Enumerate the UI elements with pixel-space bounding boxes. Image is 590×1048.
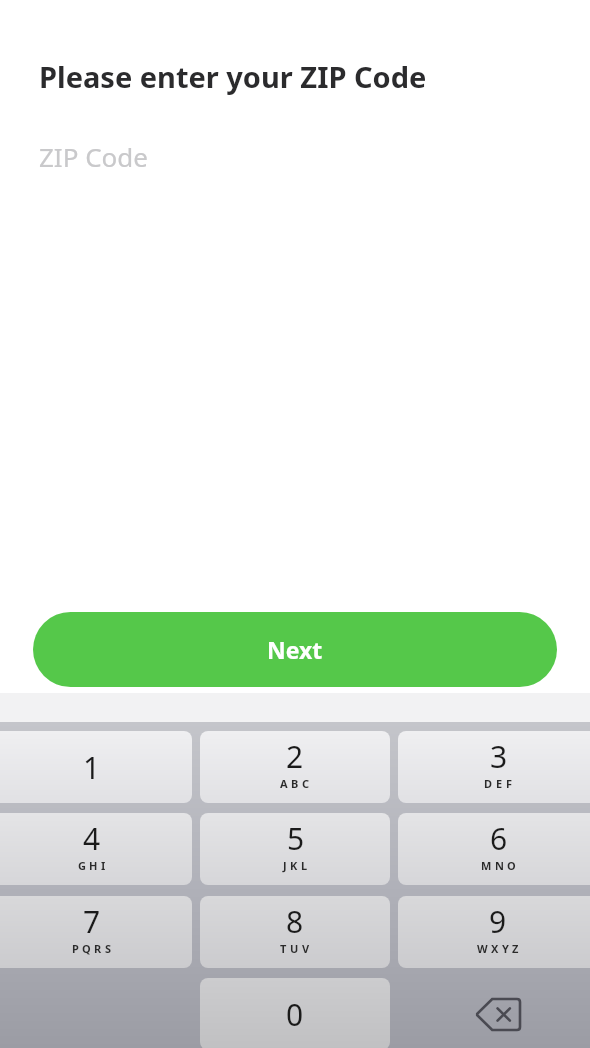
staticText: X [491, 941, 499, 956]
staticText: 4 [83, 818, 101, 859]
button[interactable]: Next [33, 612, 557, 687]
staticText: U [290, 941, 299, 956]
staticText: N [495, 858, 504, 873]
staticText: 6 [490, 818, 508, 859]
staticText: S [105, 941, 112, 956]
staticText: W [477, 941, 488, 956]
staticText: C [302, 776, 310, 791]
staticText: Q [82, 941, 91, 956]
button[interactable]: 5 [200, 813, 390, 885]
button[interactable]: 9 [398, 896, 590, 968]
staticText: A [280, 776, 288, 791]
staticText: 3 [490, 736, 508, 777]
button[interactable]: 3 [398, 731, 590, 803]
staticText: Z [512, 941, 519, 956]
staticText: O [507, 858, 516, 873]
staticText: I [101, 858, 106, 873]
staticText: D [484, 776, 493, 791]
staticText: E [496, 776, 503, 791]
staticText: 2 [286, 736, 304, 777]
staticText: F [506, 776, 513, 791]
staticText: R [94, 941, 102, 956]
staticText: M [481, 858, 492, 873]
button[interactable]: 4 [0, 813, 192, 885]
staticText: L [301, 858, 308, 873]
button[interactable]: 1 [0, 731, 192, 803]
staticText: 0 [286, 994, 304, 1035]
button[interactable]: 7 [0, 896, 192, 968]
button[interactable]: 2 [200, 731, 390, 803]
staticText: 7 [83, 901, 101, 942]
staticText: 9 [489, 901, 507, 942]
staticText: Y [502, 941, 509, 956]
staticText: G [78, 858, 86, 873]
button[interactable]: 6 [398, 813, 590, 885]
staticText: 8 [286, 901, 304, 942]
button[interactable]: 8 [200, 896, 390, 968]
staticText: 5 [287, 818, 305, 859]
staticText: H [89, 858, 98, 873]
button[interactable]: Backspace [398, 978, 590, 1048]
staticText: K [290, 858, 298, 873]
staticText: B [291, 776, 299, 791]
staticText: 1 [83, 747, 101, 788]
button[interactable]: ZIP Code [39, 139, 148, 174]
staticText: Please enter your ZIP Code [39, 57, 427, 96]
staticText: T [280, 941, 287, 956]
staticText: J [283, 858, 287, 873]
button[interactable]: 0 [200, 978, 390, 1048]
staticText: V [302, 941, 310, 956]
staticText: P [72, 941, 79, 956]
staticText: Next [267, 634, 323, 665]
